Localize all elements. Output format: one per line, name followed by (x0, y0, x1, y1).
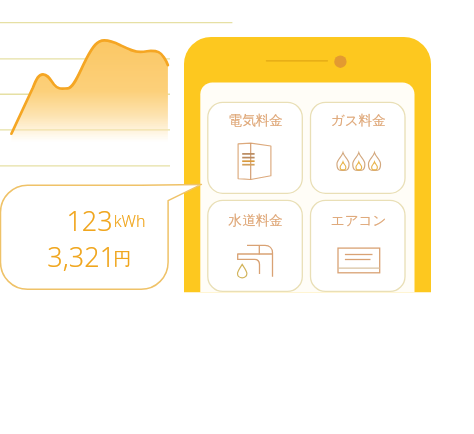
button[interactable] (0, 0, 474, 434)
